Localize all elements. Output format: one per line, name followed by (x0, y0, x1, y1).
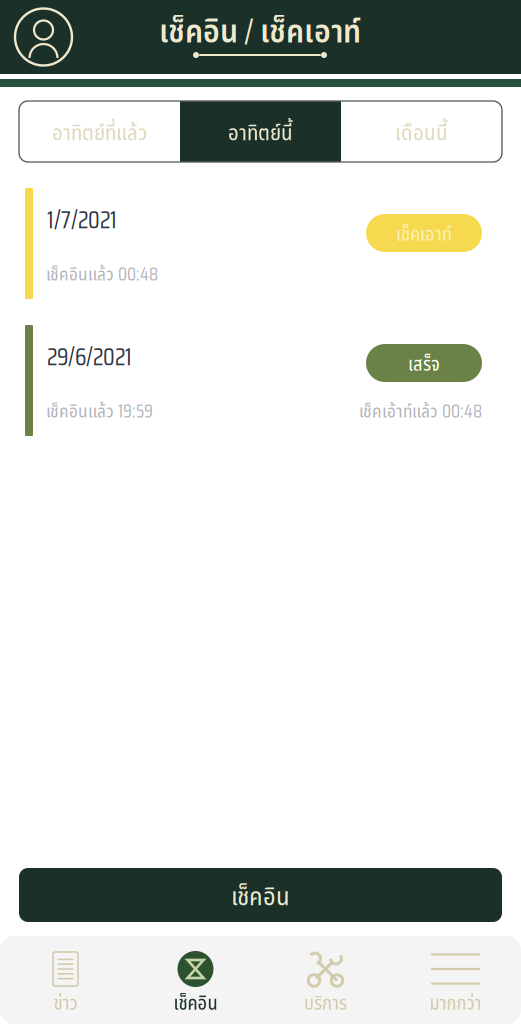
button[interactable]: อาทิตย์นี้ (180, 101, 341, 162)
staticText: อาทิตย์นี้ (228, 116, 293, 147)
button[interactable]: เดือนนี้ (341, 101, 502, 162)
staticText: เช็คอิน (231, 877, 290, 913)
staticText: 29/6/2021 (47, 338, 132, 376)
staticText: เช็คอินแล้ว 00:48 (46, 259, 158, 289)
staticText: มากกว่า (429, 988, 481, 1016)
staticText: เช็คอิน / เช็คเอาท์ (159, 5, 361, 57)
button[interactable]: อาทิตย์ที่แล้ว (19, 101, 180, 162)
staticText: อาทิตย์ที่แล้ว (52, 116, 147, 147)
staticText: 1/7/2021 (47, 201, 117, 239)
button[interactable]: ข่าว (0, 936, 130, 1024)
staticText: เสร็จ (408, 349, 440, 377)
button[interactable]: Profile (13, 7, 73, 67)
staticText: เดือนนี้ (395, 116, 448, 147)
staticText: เช็คเอ้าท์แล้ว 00:48 (359, 396, 482, 426)
button[interactable]: เช็คอิน (130, 936, 260, 1024)
staticText: เช็คอินแล้ว 19:59 (46, 396, 153, 426)
button[interactable]: เสร็จ (366, 344, 482, 382)
staticText: ข่าว (53, 988, 77, 1016)
button[interactable]: มากกว่า (390, 936, 520, 1024)
staticText: บริการ (304, 988, 347, 1016)
button[interactable]: เช็คอิน (19, 868, 502, 922)
staticText: เช็คอิน (173, 988, 217, 1016)
staticText: เช็คเอาท์ (396, 219, 452, 247)
button[interactable]: เช็คเอาท์ (366, 214, 482, 252)
button[interactable]: บริการ (260, 936, 390, 1024)
